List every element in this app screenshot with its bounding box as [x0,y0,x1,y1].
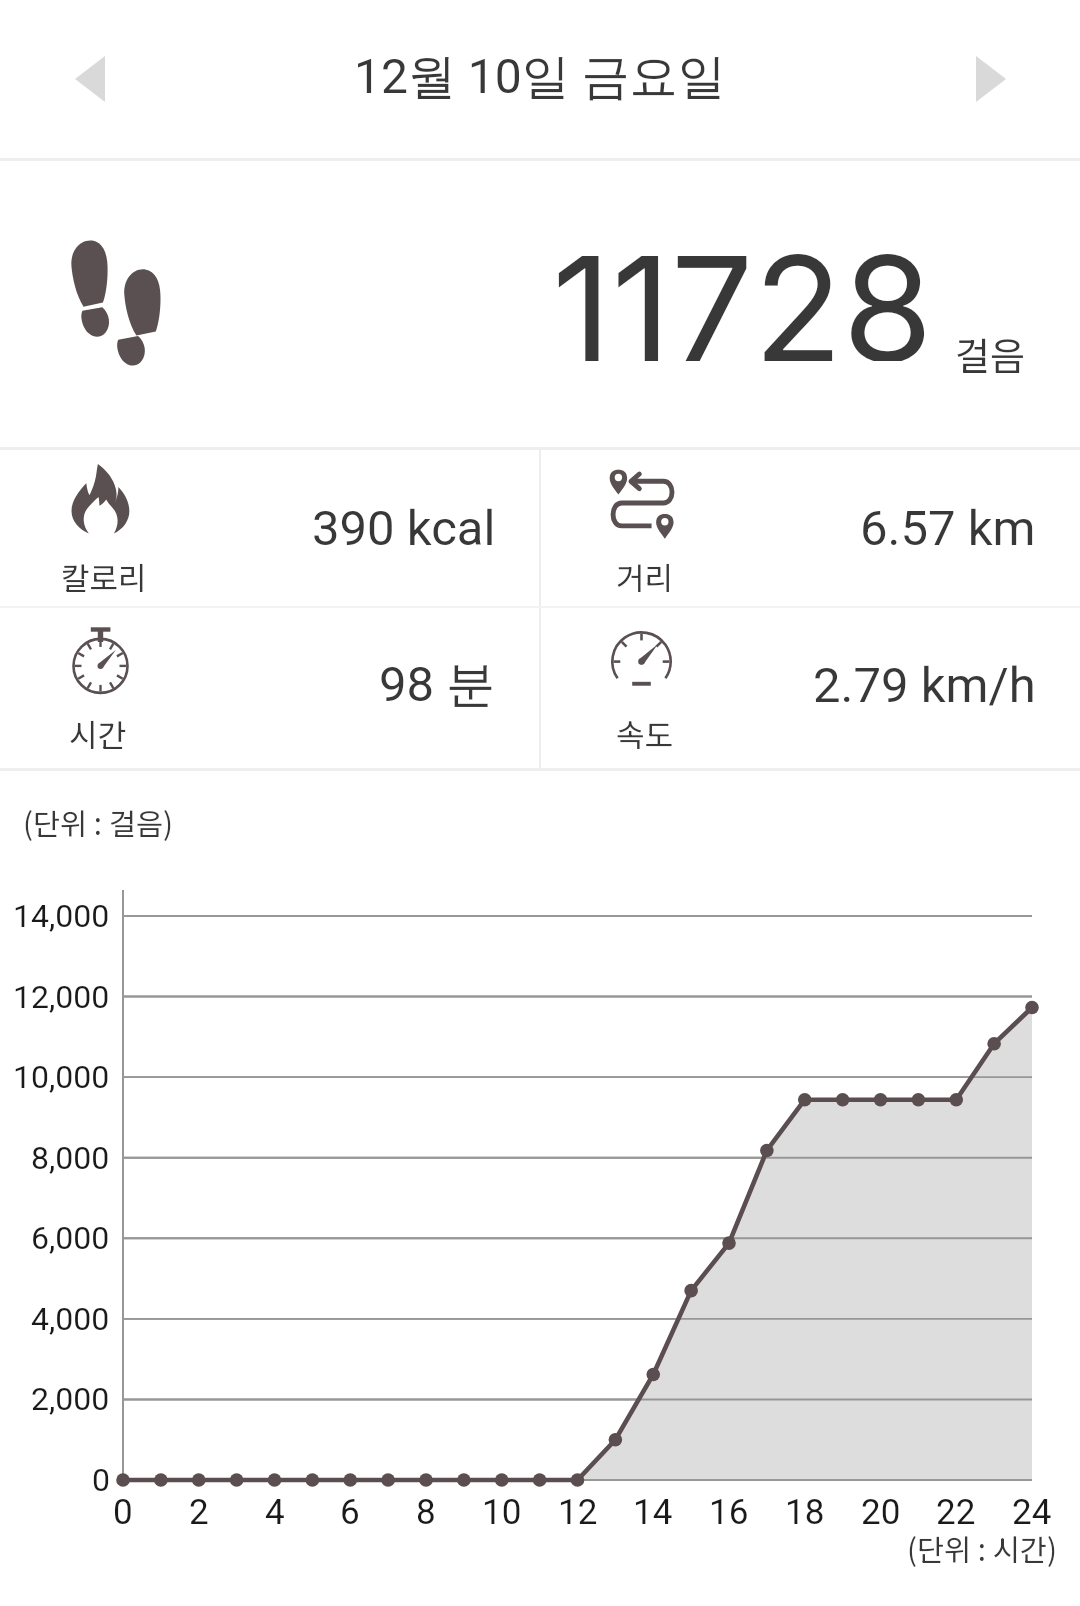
staticText: 0 [113,1492,133,1533]
staticText: 22 [936,1492,976,1533]
staticText: 12,000 [13,978,110,1016]
staticText: 14,000 [13,897,110,935]
staticText: 16 [709,1492,749,1533]
staticText: 11728 [552,221,933,361]
staticText: 4 [265,1492,285,1533]
button[interactable]: Previous day [55,39,125,119]
staticText: 8,000 [31,1139,110,1177]
staticText: 시간 [69,711,127,756]
staticText: 390 kcal [312,500,496,557]
button[interactable]: Next day [956,39,1026,119]
staticText: 98 분 [379,654,496,716]
staticText: 6.57 km [860,500,1036,557]
staticText: 8 [416,1492,436,1533]
staticText: 6 [340,1492,360,1533]
staticText: 0 [92,1461,110,1499]
staticText: 4,000 [31,1300,110,1338]
staticText: 2 [189,1492,209,1533]
button[interactable]: 속도 [540,605,1080,762]
staticText: 18 [785,1492,825,1533]
button[interactable]: 시간 [0,605,540,762]
button[interactable]: Daily steps summary [0,161,1080,447]
button[interactable]: 거리 [540,448,1080,605]
button[interactable]: 칼로리 [0,448,540,605]
staticText: 걸음 [955,326,1025,381]
staticText: 거리 [616,554,674,599]
staticText: 칼로리 [61,554,147,599]
staticText: 10 [482,1492,522,1533]
staticText: 6,000 [31,1219,110,1257]
staticText: 20 [861,1492,901,1533]
staticText: 2,000 [31,1380,110,1418]
staticText: (단위 : 걸음) [23,801,173,844]
staticText: 12월 10일 금요일 [354,47,726,107]
staticText: 2.79 km/h [813,657,1036,714]
staticText: 속도 [616,711,674,756]
staticText: 14 [633,1492,673,1533]
staticText: (단위 : 시간) [907,1527,1057,1570]
staticText: 12 [558,1492,598,1533]
staticText: 10,000 [13,1058,110,1096]
staticText: 24 [1012,1492,1052,1533]
